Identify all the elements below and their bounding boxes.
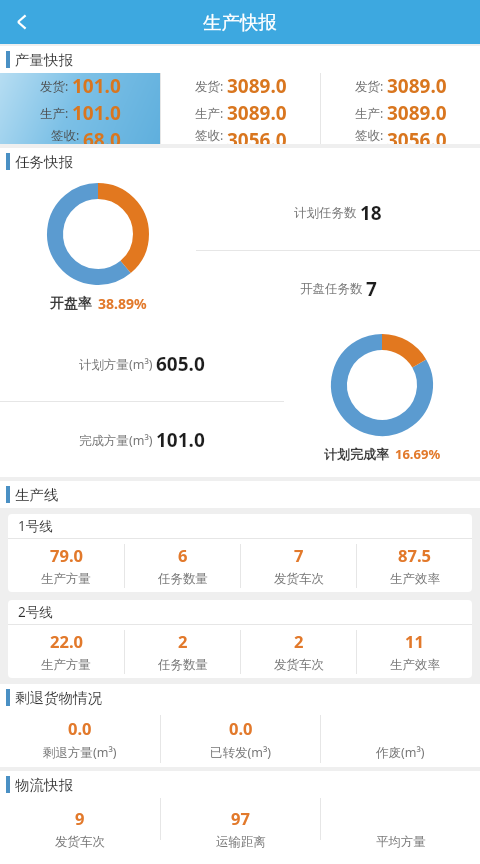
button[interactable]: 2号线 bbox=[8, 600, 472, 678]
staticText: 6 bbox=[178, 544, 188, 566]
staticText: 2 bbox=[178, 630, 188, 652]
staticText: 3056.0 bbox=[387, 127, 447, 144]
staticText: 生产线 bbox=[15, 486, 59, 504]
staticText: 生产效率 bbox=[390, 657, 440, 673]
staticText: 11 bbox=[405, 630, 424, 652]
staticText: 3089.0 bbox=[227, 100, 287, 126]
staticText: 18 bbox=[360, 200, 382, 226]
staticText: 38.89% bbox=[98, 294, 147, 313]
staticText: 产量快报 bbox=[15, 51, 73, 69]
staticText: 生产: bbox=[355, 105, 384, 122]
staticText: 发货车次 bbox=[55, 834, 105, 850]
staticText: 签收: bbox=[195, 127, 224, 144]
staticText: 生产方量 bbox=[41, 657, 91, 673]
staticText: 2 bbox=[294, 630, 304, 652]
staticText: 1号线 bbox=[18, 517, 53, 535]
staticText: 9 bbox=[75, 807, 85, 829]
button[interactable]: 1号线 bbox=[8, 514, 472, 592]
staticText: 2号线 bbox=[18, 603, 53, 621]
staticText: 生产: bbox=[195, 105, 224, 122]
staticText: 物流快报 bbox=[15, 776, 73, 794]
staticText: 发货: bbox=[355, 78, 384, 95]
staticText: 计划方量(m³) bbox=[79, 356, 153, 373]
staticText: 发货车次 bbox=[274, 571, 324, 587]
button[interactable]: 发货: bbox=[0, 73, 160, 144]
staticText: 平均方量 bbox=[376, 834, 426, 850]
staticText: 发货车次 bbox=[274, 657, 324, 673]
button[interactable]: 发货: bbox=[161, 73, 320, 144]
staticText: 剩退货物情况 bbox=[15, 689, 102, 707]
staticText: 101.0 bbox=[156, 427, 205, 453]
staticText: 3056.0 bbox=[227, 127, 287, 144]
staticText: 剩退方量(m³) bbox=[43, 744, 117, 761]
staticText: 任务数量 bbox=[158, 571, 208, 587]
staticText: 计划任务数 bbox=[294, 205, 357, 221]
staticText: 7 bbox=[366, 276, 377, 302]
staticText: 计划完成率 bbox=[324, 446, 389, 462]
staticText: 生产: bbox=[40, 105, 69, 122]
staticText: 16.69% bbox=[395, 445, 441, 463]
button[interactable]: Back bbox=[0, 0, 44, 44]
staticText: 生产方量 bbox=[41, 571, 91, 587]
button[interactable]: 计划方量(m³) bbox=[0, 326, 284, 401]
staticText: 3089.0 bbox=[227, 73, 287, 99]
staticText: 0.0 bbox=[68, 717, 92, 739]
staticText: 68.0 bbox=[83, 127, 121, 144]
staticText: 3089.0 bbox=[387, 100, 447, 126]
staticText: 发货: bbox=[195, 78, 224, 95]
staticText: 79.0 bbox=[50, 544, 83, 566]
staticText: 101.0 bbox=[72, 100, 121, 126]
staticText: 任务快报 bbox=[15, 153, 73, 171]
staticText: 运输距离 bbox=[216, 834, 266, 850]
staticText: 101.0 bbox=[72, 73, 121, 99]
staticText: 任务数量 bbox=[158, 657, 208, 673]
staticText: 22.0 bbox=[50, 630, 83, 652]
button[interactable]: 完成方量(m³) bbox=[0, 402, 284, 477]
staticText: 开盘任务数 bbox=[300, 281, 363, 297]
staticText: 0.0 bbox=[229, 717, 253, 739]
staticText: 7 bbox=[294, 544, 304, 566]
staticText: 签收: bbox=[51, 127, 80, 144]
button[interactable]: 发货: bbox=[321, 73, 480, 144]
staticText: 已转发(m³) bbox=[210, 744, 272, 761]
staticText: 生产效率 bbox=[390, 571, 440, 587]
staticText: 生产快报 bbox=[203, 11, 277, 34]
staticText: 签收: bbox=[355, 127, 384, 144]
staticText: 作废(m³) bbox=[376, 744, 425, 761]
staticText: 605.0 bbox=[156, 351, 205, 377]
staticText: 87.5 bbox=[398, 544, 431, 566]
staticText: 3089.0 bbox=[387, 73, 447, 99]
staticText: 开盘率 bbox=[50, 295, 92, 313]
staticText: 发货: bbox=[40, 78, 69, 95]
button[interactable]: 开盘任务数 bbox=[196, 251, 480, 326]
staticText: 完成方量(m³) bbox=[79, 432, 153, 449]
staticText: 97 bbox=[231, 807, 250, 829]
button[interactable]: 计划任务数 bbox=[196, 175, 480, 250]
